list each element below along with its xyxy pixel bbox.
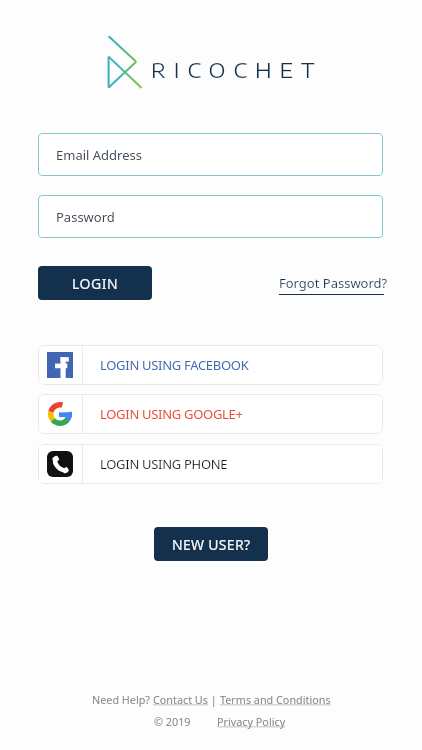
staticText: NEW USER? — [172, 535, 251, 554]
staticText: Need Help? — [92, 692, 153, 707]
button[interactable]: Phone — [38, 444, 383, 484]
staticText: LOGIN — [72, 274, 119, 293]
button[interactable]: Terms and Conditions — [220, 692, 331, 707]
other: Phone — [47, 451, 73, 477]
staticText: LOGIN USING FACEBOOK — [100, 356, 249, 374]
staticText: LOGIN USING PHONE — [100, 455, 228, 473]
button[interactable]: NEW USER? — [154, 527, 268, 561]
button[interactable]: Facebook — [38, 345, 383, 385]
button[interactable]: LOGIN — [38, 266, 152, 300]
staticText: RICOCHET — [151, 57, 323, 83]
button[interactable]: Contact Us — [153, 692, 208, 707]
staticText: | — [208, 692, 220, 707]
other: Facebook — [47, 352, 73, 378]
other: Google — [48, 402, 72, 426]
staticText: © 2019 — [154, 714, 191, 729]
button[interactable]: Google — [38, 394, 383, 434]
staticText: Password — [56, 208, 115, 226]
button[interactable]: Password — [38, 195, 383, 238]
staticText: LOGIN USING GOOGLE+ — [100, 405, 243, 423]
button[interactable]: Forgot Password? — [279, 274, 388, 295]
button[interactable]: Privacy Policy — [217, 714, 286, 729]
staticText: Email Address — [56, 146, 142, 164]
staticText: Forgot Password? — [279, 274, 388, 292]
button[interactable]: Email Address — [38, 133, 383, 176]
